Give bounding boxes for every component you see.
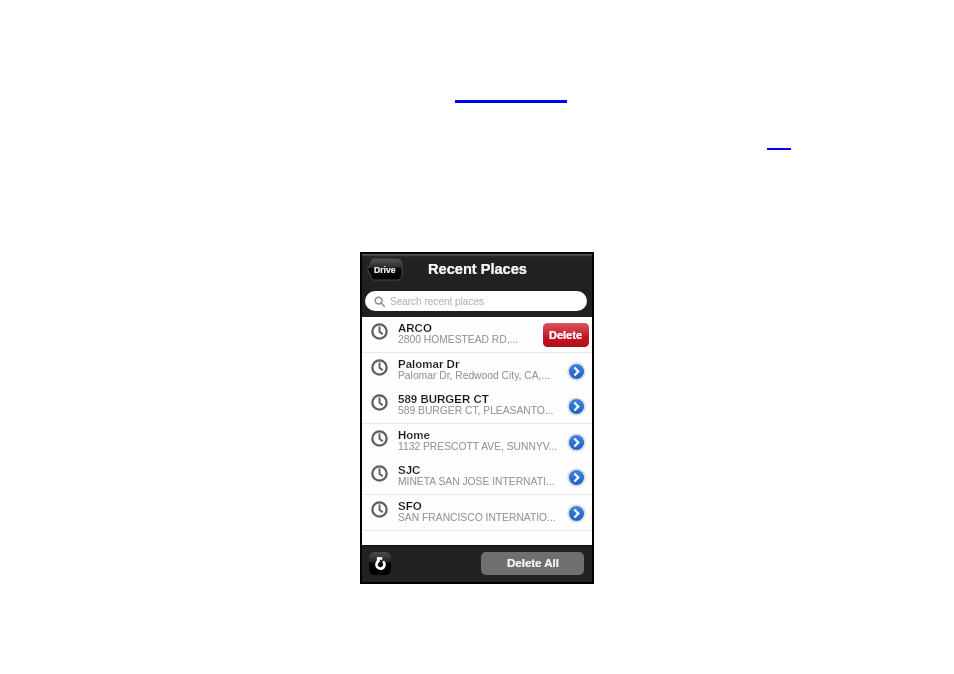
button[interactable]: SJC — [362, 459, 592, 495]
staticText: Home — [398, 429, 430, 442]
button[interactable]: Show details — [567, 397, 586, 416]
button[interactable]: Delete All — [481, 552, 584, 575]
button[interactable]: Delete — [543, 323, 589, 347]
staticText: Delete All — [507, 557, 559, 570]
button[interactable]: Search recent places — [365, 291, 587, 311]
staticText: ARCO — [398, 322, 432, 335]
button[interactable]: Home — [362, 424, 592, 460]
button[interactable]: Show details — [567, 362, 586, 381]
button[interactable]: Refresh — [369, 552, 391, 575]
staticText: SAN FRANCISCO INTERNATIO... — [398, 512, 556, 524]
button[interactable]: SFO — [362, 495, 592, 531]
button[interactable]: ARCO — [362, 317, 592, 353]
staticText: Delete — [549, 329, 583, 341]
staticText: 589 BURGER CT, PLEASANTO... — [398, 405, 554, 417]
button[interactable]: Show details — [567, 433, 586, 452]
staticText: Palomar Dr, Redwood City, CA,... — [398, 370, 551, 382]
staticText: 2800 HOMESTEAD RD,... — [398, 334, 519, 346]
staticText: Palomar Dr — [398, 358, 460, 371]
staticText: Drive — [374, 265, 396, 275]
staticText: Search recent places — [390, 296, 484, 307]
button[interactable]: Show details — [567, 468, 586, 487]
button[interactable]: Palomar Dr — [362, 353, 592, 389]
staticText: SJC — [398, 464, 421, 477]
button[interactable]: 589 BURGER CT — [362, 388, 592, 424]
staticText: Recent Places — [428, 261, 527, 277]
staticText: SFO — [398, 500, 422, 513]
button[interactable]: Drive — [366, 259, 402, 280]
button[interactable]: Show details — [567, 504, 586, 523]
staticText: 1132 PRESCOTT AVE, SUNNYV... — [398, 441, 558, 453]
staticText: 589 BURGER CT — [398, 393, 489, 406]
staticText: MINETA SAN JOSE INTERNATI... — [398, 476, 555, 488]
